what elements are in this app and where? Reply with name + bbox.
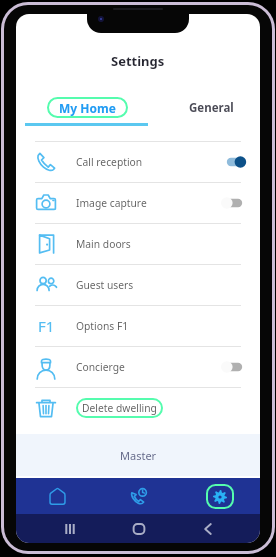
staticText: Master	[120, 448, 157, 463]
staticText: Guest users	[76, 278, 134, 292]
button[interactable]: Main doors	[16, 223, 260, 264]
button[interactable]: Home	[16, 478, 98, 514]
button[interactable]: General	[168, 97, 254, 118]
button[interactable]: Image capture	[16, 182, 260, 223]
staticText: Concierge	[76, 360, 125, 374]
staticText: Options F1	[76, 319, 129, 333]
staticText: F1	[38, 316, 55, 336]
button[interactable]: My Home	[47, 97, 128, 118]
button[interactable]: Settings	[179, 478, 260, 514]
staticText: Image capture	[76, 196, 147, 210]
staticText: My Home	[59, 100, 116, 116]
button[interactable]: Master	[16, 434, 260, 476]
staticText: General	[189, 100, 234, 116]
staticText: Main doors	[76, 237, 131, 251]
staticText: Call reception	[76, 155, 143, 169]
button[interactable]: Call history	[98, 478, 179, 514]
button[interactable]: Concierge	[16, 346, 260, 387]
button[interactable]: Call reception	[16, 141, 260, 182]
staticText: Delete dwelling	[82, 401, 157, 415]
button[interactable]: F1	[16, 305, 260, 346]
button[interactable]: Guest users	[16, 264, 260, 305]
staticText: Settings	[111, 52, 165, 70]
button[interactable]: Delete dwelling	[16, 387, 260, 428]
